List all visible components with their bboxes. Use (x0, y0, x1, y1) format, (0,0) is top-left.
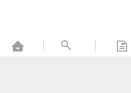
button[interactable]: News (110, 35, 131, 57)
button[interactable]: Home (5, 35, 31, 57)
button[interactable]: Search (54, 35, 80, 57)
